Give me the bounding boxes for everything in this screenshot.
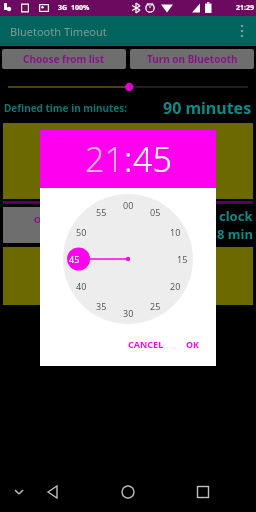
staticText: 21:29 [236,3,254,13]
staticText: 30 [123,307,134,319]
staticText: specific time [40,225,97,237]
staticText: 100% [71,3,90,13]
staticText: Defined time in minutes: [4,101,128,115]
staticText: 20 [170,280,181,292]
staticText: 50 [76,226,87,238]
button[interactable]: CANCEL [122,334,170,354]
staticText: Or turn off at a [34,213,102,225]
button[interactable]: Choose from list [2,49,126,69]
staticText: 3G [58,3,68,13]
staticText: clock [219,207,253,225]
button[interactable]: Turn on Bluetooth [130,49,254,69]
staticText: 8 min [217,225,253,243]
button[interactable]: Home [115,479,141,505]
staticText: 00 [123,199,134,211]
staticText: 40 [76,280,87,292]
staticText: Turn on Bluetooth [147,52,238,66]
staticText: 35 [96,300,107,312]
staticText: 21 [85,136,124,182]
button[interactable]: More options [228,17,256,45]
button[interactable]: OK [180,334,206,354]
staticText: 90 minutes [163,97,252,119]
button[interactable]: Hide keyboard [6,479,32,505]
button[interactable]: Or turn off at a [3,207,133,243]
button[interactable]: Back [40,479,66,505]
staticText: 05 [150,206,161,218]
staticText: 25 [150,300,161,312]
staticText: OK [186,338,200,350]
button[interactable]: Recents [190,479,216,505]
staticText: 55 [96,206,107,218]
button[interactable]: 21 [40,130,216,188]
staticText: 45 [69,253,80,265]
staticText: 10 [170,226,181,238]
staticText: CANCEL [128,338,164,350]
staticText: 45 [133,136,172,182]
staticText: Choose from list [23,52,105,66]
staticText: 15 [177,253,188,265]
staticText: : [124,136,133,182]
staticText: Bluetooth Timeout [10,24,107,39]
